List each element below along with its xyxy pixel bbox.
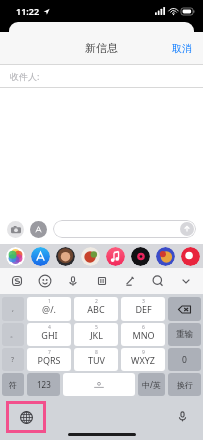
- button[interactable]: Sogou logo: [6, 270, 28, 292]
- staticText: 8: [95, 349, 98, 356]
- button[interactable]: ?: [2, 348, 24, 371]
- staticText: 6: [142, 324, 145, 331]
- button[interactable]: Switch keyboard: [6, 401, 46, 433]
- button[interactable]: 5: [74, 323, 118, 346]
- staticText: 。: [10, 330, 17, 339]
- button[interactable]: 收件人:: [0, 65, 203, 87]
- button[interactable]: 取消: [168, 39, 196, 58]
- button[interactable]: Apps: [30, 221, 47, 238]
- button[interactable]: Send: [53, 220, 196, 238]
- staticText: 9: [142, 349, 145, 356]
- staticText: ?: [11, 355, 15, 365]
- staticText: 1: [48, 298, 51, 305]
- staticText: MNO: [132, 329, 155, 341]
- staticText: 符: [9, 380, 17, 390]
- button[interactable]: Voice input: [62, 270, 84, 292]
- staticText: TUV: [88, 354, 105, 366]
- button[interactable]: Delete: [168, 297, 201, 321]
- staticText: PQRS: [37, 354, 61, 366]
- staticText: 3: [142, 298, 145, 305]
- button[interactable]: App: [181, 247, 200, 266]
- staticText: 7: [48, 349, 51, 356]
- button[interactable]: Send: [180, 222, 194, 236]
- button[interactable]: 7: [27, 348, 71, 371]
- staticText: 收件人:: [10, 70, 40, 82]
- button[interactable]: App: [31, 247, 50, 266]
- button[interactable]: App: [106, 247, 125, 266]
- button[interactable]: 1: [27, 297, 71, 321]
- button[interactable]: App: [56, 247, 75, 266]
- button[interactable]: 123: [27, 373, 60, 396]
- button[interactable]: 9: [121, 348, 165, 371]
- staticText: 换行: [177, 380, 193, 390]
- button[interactable]: App: [156, 247, 175, 266]
- button[interactable]: Camera: [7, 221, 24, 238]
- button[interactable]: Dictation: [171, 405, 193, 427]
- button[interactable]: 6: [121, 323, 165, 346]
- staticText: DEF: [135, 303, 152, 315]
- button[interactable]: App: [81, 247, 100, 266]
- button[interactable]: 重输: [168, 323, 201, 346]
- staticText: 11:22: [16, 5, 40, 17]
- button[interactable]: Collapse keyboard: [175, 270, 197, 292]
- button[interactable]: 符: [2, 373, 24, 396]
- button[interactable]: Emoji: [34, 270, 56, 292]
- staticText: 2: [95, 298, 98, 305]
- button[interactable]: Handwrite: [119, 270, 141, 292]
- button[interactable]: App: [6, 247, 25, 266]
- button[interactable]: 0: [168, 348, 201, 371]
- staticText: WXYZ: [131, 354, 155, 366]
- staticText: GHI: [41, 329, 58, 341]
- staticText: 123: [37, 379, 51, 390]
- staticText: ABC: [87, 303, 105, 315]
- button[interactable]: 2: [74, 297, 118, 321]
- staticText: JKL: [90, 329, 103, 341]
- button[interactable]: 中/英: [138, 373, 165, 396]
- button[interactable]: 3: [121, 297, 165, 321]
- staticText: 5: [95, 324, 98, 331]
- staticText: 重输: [176, 329, 193, 340]
- staticText: ,: [12, 304, 14, 314]
- button[interactable]: Handwriting panel: [91, 270, 113, 292]
- staticText: @/.: [42, 303, 56, 315]
- button[interactable]: Search: [147, 270, 169, 292]
- button[interactable]: 4: [27, 323, 71, 346]
- staticText: 0: [182, 354, 187, 366]
- staticText: 4: [48, 324, 51, 331]
- button[interactable]: 8: [74, 348, 118, 371]
- button[interactable]: 换行: [168, 373, 201, 396]
- button[interactable]: App: [131, 247, 150, 266]
- staticText: 中/英: [142, 379, 161, 390]
- staticText: 取消: [172, 42, 192, 55]
- staticText: 新信息: [85, 41, 118, 55]
- button[interactable]: Space: [63, 373, 135, 396]
